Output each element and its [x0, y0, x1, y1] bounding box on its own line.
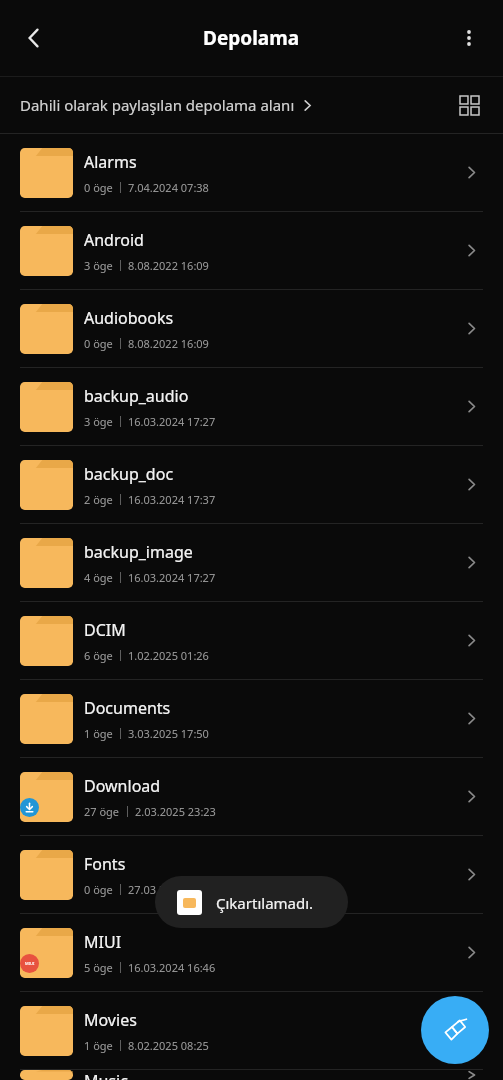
button[interactable]: backup_image [0, 524, 503, 601]
staticText: Documents [84, 697, 171, 719]
staticText: Fonts [84, 853, 126, 875]
staticText: 8.08.2022 16:09 [128, 258, 209, 273]
button[interactable]: MIUI [0, 914, 503, 991]
button[interactable]: Documents [0, 680, 503, 757]
button[interactable]: Movies [0, 992, 503, 1069]
staticText: 0 öge [84, 882, 113, 897]
staticText: Android [84, 229, 144, 251]
staticText: 16.03.2024 17:27 [128, 414, 216, 429]
staticText: 16.03.2024 17:37 [128, 492, 216, 507]
staticText: 16.03.2024 16:46 [128, 960, 216, 975]
button[interactable]: backup_audio [0, 368, 503, 445]
button[interactable]: Fonts [0, 836, 503, 913]
staticText: MIUI [25, 961, 35, 966]
button[interactable]: Download [0, 758, 503, 835]
button[interactable]: Android [0, 212, 503, 289]
staticText: 3 öge [84, 414, 113, 429]
staticText: Movies [84, 1009, 137, 1031]
staticText: Dahili olarak paylaşılan depolama alanı [20, 95, 295, 115]
button[interactable]: Music [0, 1070, 503, 1080]
staticText: backup_audio [84, 385, 189, 407]
staticText: MIUI [84, 931, 122, 953]
button[interactable]: DCIM [0, 602, 503, 679]
staticText: 27 öge [84, 804, 120, 819]
staticText: 27.03.2024 12:11 [128, 882, 216, 897]
staticText: 1 öge [84, 1038, 113, 1053]
staticText: backup_doc [84, 463, 174, 485]
button[interactable]: More options [445, 14, 493, 62]
staticText: 0 öge [84, 336, 113, 351]
staticText: Depolama [203, 25, 300, 51]
button[interactable]: Dahili olarak paylaşılan depolama alanı [20, 95, 314, 115]
staticText: Download [84, 775, 161, 797]
staticText: 3 öge [84, 258, 113, 273]
staticText: Çıkartılamadı. [216, 893, 314, 913]
button[interactable]: backup_doc [0, 446, 503, 523]
button[interactable]: Audiobooks [0, 290, 503, 367]
staticText: 7.04.2024 07:38 [128, 180, 209, 195]
staticText: backup_image [84, 541, 193, 563]
staticText: 8.08.2022 16:09 [128, 336, 209, 351]
staticText: DCIM [84, 619, 126, 641]
staticText: 16.03.2024 17:27 [128, 570, 216, 585]
button[interactable]: Back [10, 14, 58, 62]
staticText: Music [84, 1070, 128, 1080]
button[interactable]: Clean up [421, 996, 489, 1064]
staticText: 4 öge [84, 570, 113, 585]
button[interactable]: Alarms [0, 134, 503, 211]
staticText: 6 öge [84, 648, 113, 663]
staticText: Audiobooks [84, 307, 174, 329]
staticText: 5 öge [84, 960, 113, 975]
button[interactable]: Grid view [447, 83, 491, 127]
staticText: 1 öge [84, 726, 113, 741]
staticText: 0 öge [84, 180, 113, 195]
staticText: 2.03.2025 23:23 [135, 804, 216, 819]
staticText: 8.02.2025 08:25 [128, 1038, 209, 1053]
staticText: 1.02.2025 01:26 [128, 648, 209, 663]
staticText: Alarms [84, 151, 137, 173]
staticText: 2 öge [84, 492, 113, 507]
staticText: 3.03.2025 17:50 [128, 726, 209, 741]
